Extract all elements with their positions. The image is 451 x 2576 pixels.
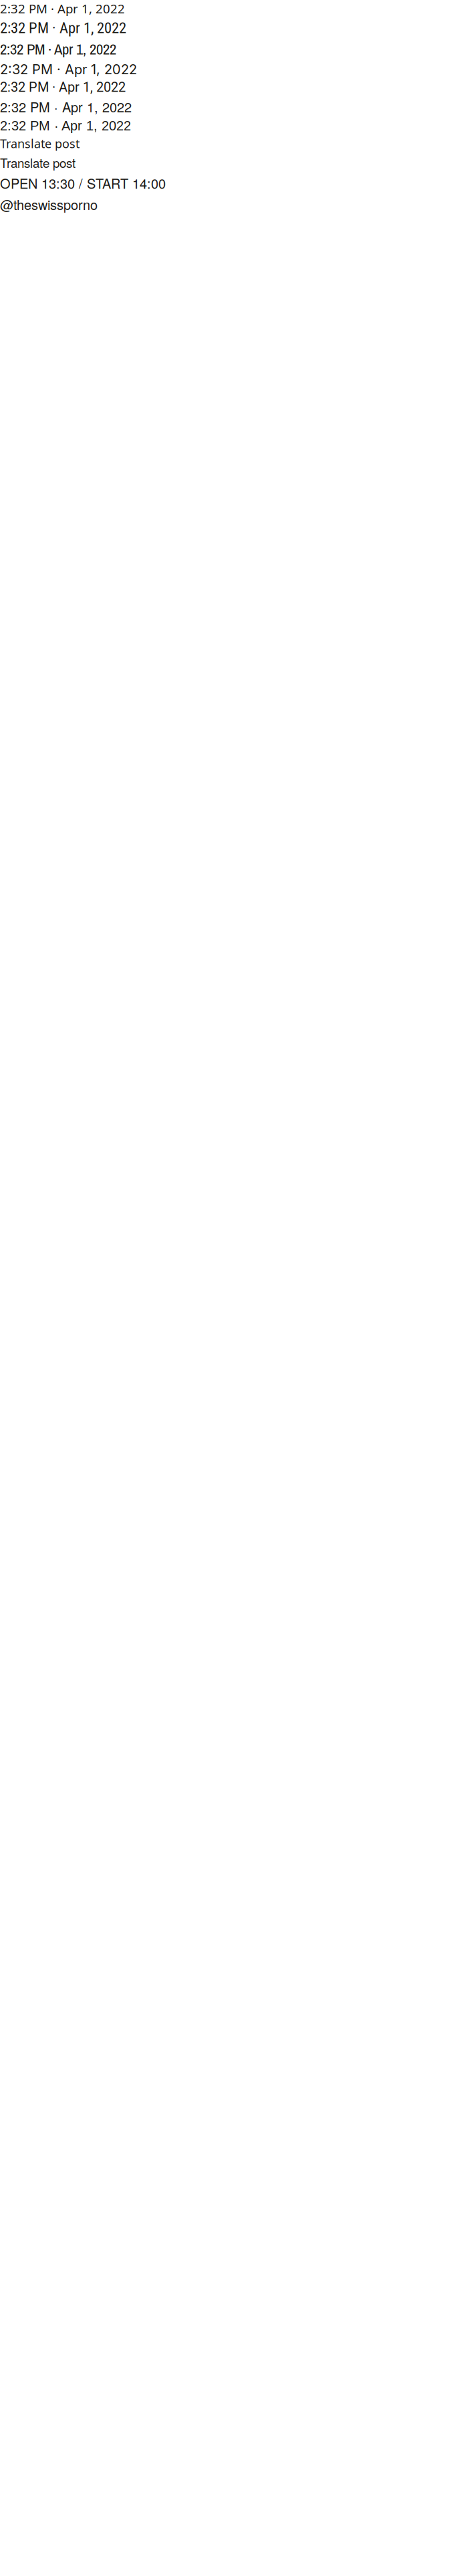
staticText: OPEN 13:30 / START 14:00 (0, 173, 166, 193)
staticText: @theswissporno (0, 195, 98, 214)
staticText: 2:32 PM · Apr 1, 2022 (0, 97, 132, 116)
staticText: Translate post (0, 154, 76, 171)
staticText: 2:32 PM · Apr 1, 2022 (0, 19, 126, 37)
staticText: 2:32 PM · Apr 1, 2022 (0, 39, 116, 59)
staticText: 2:32 PM · Apr 1, 2022 (0, 61, 137, 77)
staticText: Translate post (0, 135, 80, 152)
staticText: 2:32 PM · Apr 1, 2022 (0, 118, 131, 133)
staticText: 2:32 PM · Apr 1, 2022 (0, 79, 126, 95)
staticText: 2:32 PM · Apr 1, 2022 (0, 0, 125, 17)
